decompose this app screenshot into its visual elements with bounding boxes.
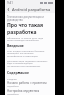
staticText: 9:41	[7, 1, 13, 5]
staticText: подробнее	[7, 93, 19, 95]
staticText: Обновлено 12 марта 2024 года автор коман…	[7, 36, 44, 42]
staticText: Этот раздел описывает базовые принципы п…	[7, 49, 53, 58]
staticText: Документация содержит примеры кода и рек…	[7, 59, 53, 68]
staticText: Техническая документация и руководства	[7, 15, 53, 21]
staticText: Содержание	[7, 70, 29, 75]
staticText: Разделы	[7, 77, 17, 80]
staticText: Введение	[7, 43, 24, 48]
staticText: Про что такая разработка	[7, 22, 53, 35]
button[interactable]: Back	[5, 6, 12, 13]
staticText: Настройка окружения	[7, 89, 40, 93]
staticText: Android разработка	[12, 7, 51, 12]
staticText: Начало работы с проектом	[7, 81, 47, 85]
staticText: подробнее	[7, 85, 19, 88]
